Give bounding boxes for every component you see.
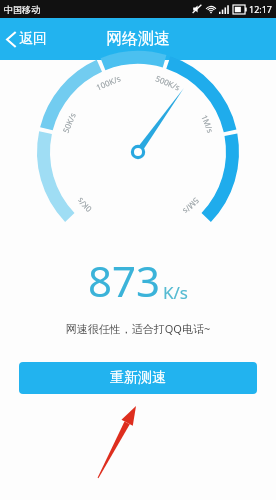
staticText: 中国移动 <box>4 4 40 15</box>
staticText: 100K/s <box>94 72 122 93</box>
staticText: 873 <box>88 252 161 309</box>
button[interactable]: 重新测速 <box>19 362 257 394</box>
button[interactable]: Back <box>0 23 59 55</box>
staticText: 12:17 <box>249 3 273 15</box>
staticText: 重新测速 <box>110 369 166 387</box>
other: Back <box>6 31 17 48</box>
staticText: 返回 <box>19 30 47 48</box>
staticText: 1M/s <box>199 113 216 135</box>
staticText: 网络测速 <box>106 29 170 49</box>
staticText: K/s <box>163 281 188 304</box>
staticText: 5M/s <box>181 195 202 217</box>
staticText: 网速很任性，适合打QQ电话~ <box>0 321 276 336</box>
staticText: 500K/s <box>154 72 182 93</box>
staticText: 0K/s <box>74 195 94 215</box>
staticText: 50K/s <box>60 111 78 134</box>
